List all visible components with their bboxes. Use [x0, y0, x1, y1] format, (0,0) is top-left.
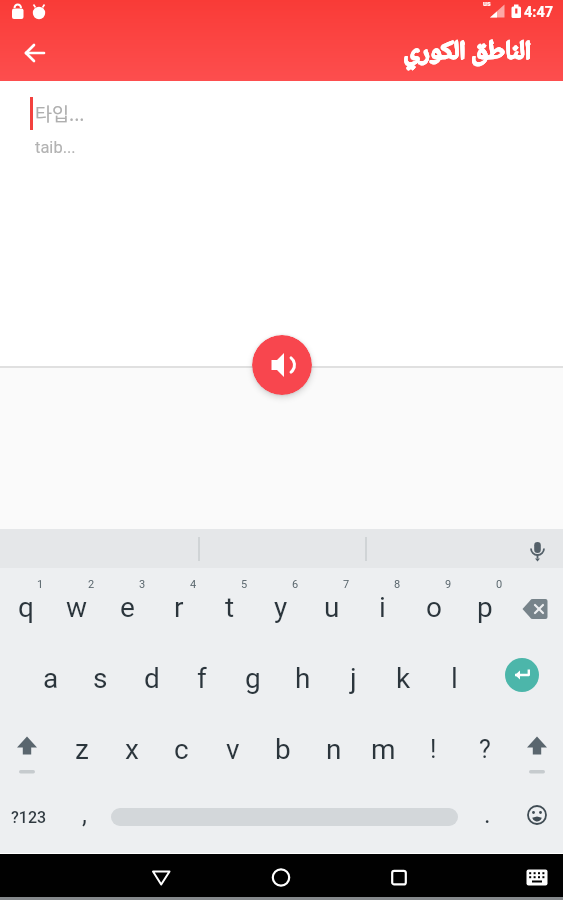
- staticText: ?123: [11, 808, 47, 827]
- button[interactable]: [512, 781, 563, 853]
- button[interactable]: f: [176, 639, 227, 710]
- staticText: q: [18, 591, 34, 624]
- staticText: x: [125, 733, 139, 766]
- button[interactable]: [511, 710, 562, 781]
- button[interactable]: [1, 710, 52, 781]
- staticText: r: [174, 591, 184, 624]
- staticText: 7: [343, 578, 350, 591]
- staticText: 5: [241, 578, 248, 591]
- button[interactable]: t: [204, 568, 255, 639]
- button[interactable]: [14, 32, 56, 74]
- staticText: 4:47: [524, 4, 554, 21]
- staticText: 2: [88, 578, 95, 591]
- staticText: ?: [479, 735, 491, 764]
- button[interactable]: ,: [64, 781, 104, 852]
- button[interactable]: g: [227, 639, 278, 710]
- button[interactable]: [252, 335, 312, 395]
- staticText: s: [93, 662, 108, 695]
- staticText: 8: [394, 578, 401, 591]
- staticText: n: [326, 733, 342, 766]
- button[interactable]: [140, 854, 184, 900]
- staticText: f: [197, 662, 207, 695]
- button[interactable]: m: [358, 710, 409, 781]
- button[interactable]: q: [0, 568, 51, 639]
- staticText: 3: [139, 578, 146, 591]
- staticText: i: [379, 591, 386, 624]
- staticText: m: [371, 733, 396, 766]
- button[interactable]: k: [378, 639, 429, 710]
- staticText: t: [225, 591, 235, 624]
- button[interactable]: s: [75, 639, 126, 710]
- staticText: 6: [292, 578, 299, 591]
- staticText: b: [275, 733, 291, 766]
- staticText: w: [66, 591, 88, 624]
- staticText: a: [43, 662, 59, 695]
- button[interactable]: h: [277, 639, 328, 710]
- button[interactable]: o: [408, 568, 459, 639]
- button[interactable]: z: [56, 710, 107, 781]
- staticText: l: [451, 662, 458, 695]
- button[interactable]: b: [257, 710, 308, 781]
- staticText: y: [274, 591, 288, 624]
- button[interactable]: p: [459, 568, 510, 639]
- staticText: h: [295, 662, 311, 695]
- button[interactable]: a: [25, 639, 76, 710]
- staticText: 9: [445, 578, 452, 591]
- button[interactable]: u: [306, 568, 357, 639]
- button[interactable]: [259, 854, 303, 900]
- button[interactable]: l: [429, 639, 480, 710]
- button[interactable]: e: [102, 568, 153, 639]
- staticText: الناطق الكوري: [404, 34, 532, 69]
- button[interactable]: [512, 568, 563, 639]
- staticText: u: [324, 591, 340, 624]
- staticText: us: [483, 0, 491, 8]
- button[interactable]: x: [106, 710, 157, 781]
- staticText: الناطق الكوري: [403, 34, 531, 69]
- staticText: 0: [496, 578, 503, 591]
- button[interactable]: ?: [459, 710, 510, 781]
- button[interactable]: [516, 854, 560, 900]
- button[interactable]: !: [408, 710, 459, 781]
- staticText: !: [430, 735, 437, 764]
- staticText: v: [226, 733, 240, 766]
- staticText: d: [144, 662, 160, 695]
- button[interactable]: .: [467, 781, 507, 852]
- staticText: g: [245, 662, 261, 695]
- button[interactable]: d: [126, 639, 177, 710]
- staticText: z: [75, 733, 89, 766]
- staticText: o: [426, 591, 442, 624]
- button[interactable]: [377, 854, 421, 900]
- button[interactable]: r: [153, 568, 204, 639]
- button[interactable]: [524, 539, 551, 566]
- staticText: taib...: [35, 138, 76, 157]
- button[interactable]: 타입...: [0, 81, 563, 366]
- staticText: p: [477, 591, 493, 624]
- staticText: 타입...: [35, 100, 85, 127]
- staticText: الناطق الكوري: [403, 35, 531, 70]
- button[interactable]: ?123: [0, 781, 58, 853]
- staticText: 1: [37, 578, 44, 591]
- button[interactable]: w: [51, 568, 102, 639]
- button[interactable]: j: [328, 639, 379, 710]
- staticText: ,: [82, 800, 87, 829]
- staticText: k: [396, 662, 411, 695]
- staticText: c: [174, 733, 189, 766]
- button[interactable]: y: [255, 568, 306, 639]
- staticText: 4: [190, 578, 197, 591]
- staticText: j: [350, 662, 357, 695]
- button[interactable]: c: [156, 710, 207, 781]
- staticText: .: [484, 800, 491, 829]
- button[interactable]: v: [207, 710, 258, 781]
- staticText: e: [120, 591, 135, 624]
- button[interactable]: [505, 658, 539, 692]
- button[interactable]: i: [357, 568, 408, 639]
- staticText: الناطق الكوري: [404, 34, 532, 69]
- button[interactable]: n: [308, 710, 359, 781]
